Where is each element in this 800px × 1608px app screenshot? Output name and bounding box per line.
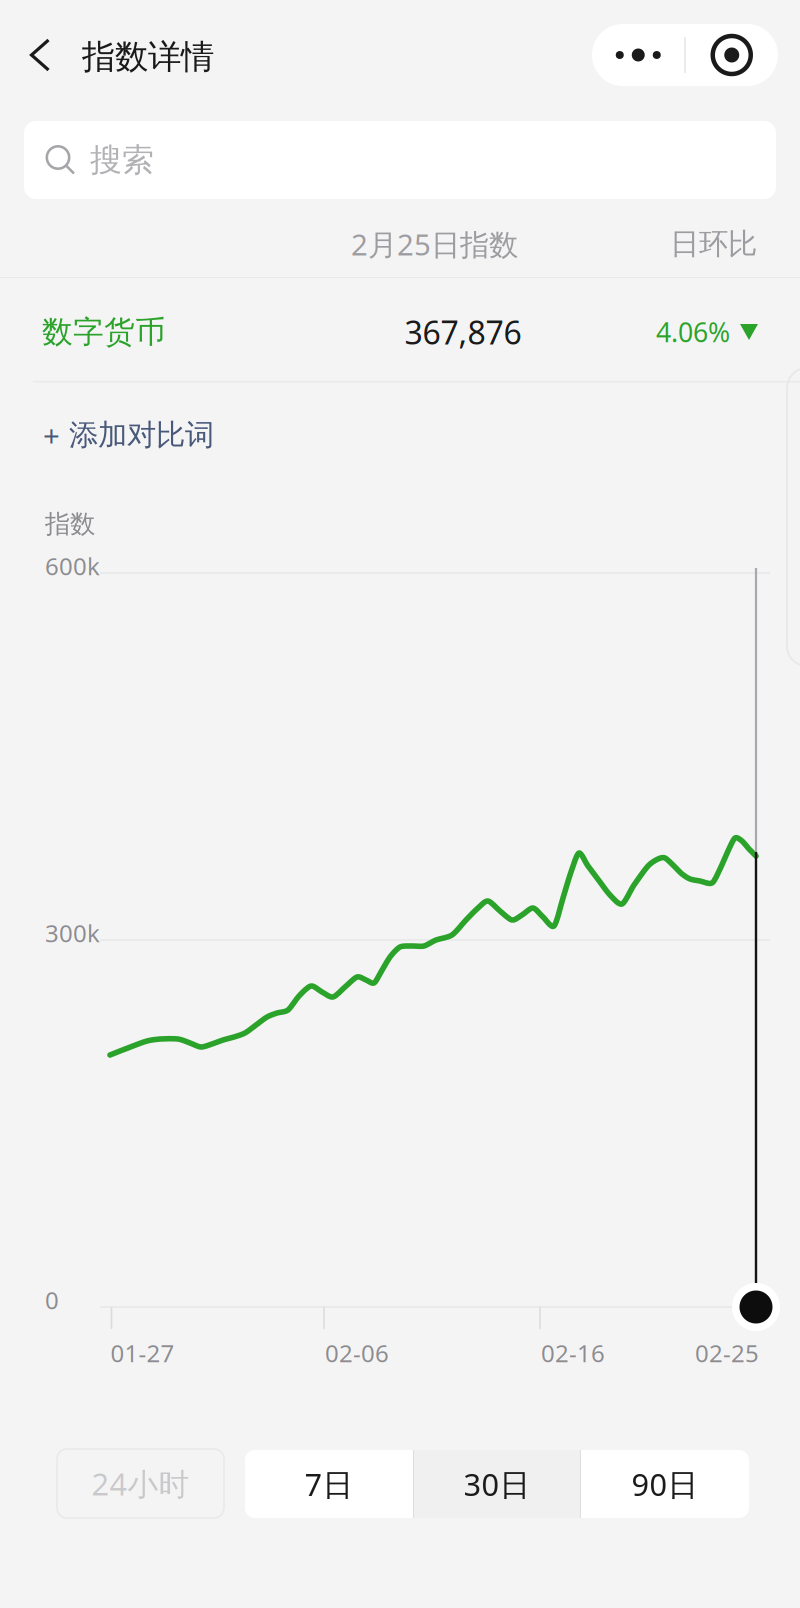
- staticText: 0: [45, 1284, 59, 1316]
- staticText: 30日: [463, 1464, 530, 1504]
- staticText: 300k: [45, 917, 100, 949]
- staticText: 日环比: [670, 226, 757, 262]
- staticText: +: [43, 415, 60, 454]
- staticText: 24小时: [91, 1463, 189, 1504]
- button[interactable]: Back: [11, 20, 69, 90]
- staticText: 367,876: [404, 311, 521, 353]
- staticText: 600k: [45, 550, 100, 582]
- staticText: 4.06%: [656, 314, 730, 350]
- button[interactable]: +: [0, 400, 420, 470]
- button[interactable]: Close: [686, 26, 778, 84]
- staticText: 指数: [45, 508, 95, 539]
- button[interactable]: 数字货币: [0, 278, 800, 382]
- staticText: 01-27: [110, 1337, 174, 1369]
- staticText: 7日: [304, 1464, 353, 1504]
- staticText: 90日: [631, 1464, 698, 1504]
- staticText: 02-25: [695, 1337, 759, 1369]
- button[interactable]: 7日: [245, 1450, 413, 1518]
- button[interactable]: More: [592, 26, 684, 84]
- staticText: 02-06: [325, 1337, 389, 1369]
- button[interactable]: 30日: [414, 1450, 580, 1518]
- staticText: 数字货币: [42, 313, 166, 351]
- staticText: 添加对比词: [69, 417, 214, 453]
- staticText: 02-16: [541, 1337, 605, 1369]
- button[interactable]: 搜索: [24, 121, 776, 199]
- button[interactable]: 24小时: [57, 1449, 224, 1518]
- staticText: 2月25日指数: [351, 224, 518, 263]
- button[interactable]: 90日: [581, 1450, 749, 1518]
- staticText: 搜索: [90, 140, 154, 180]
- staticText: 指数详情: [82, 36, 214, 77]
